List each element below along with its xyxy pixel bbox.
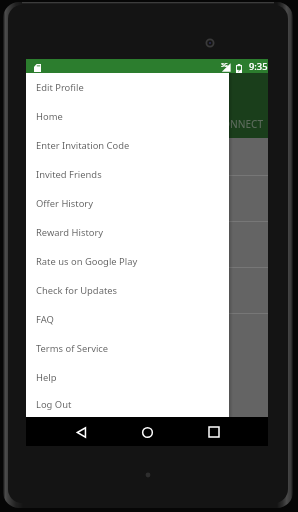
button[interactable]: Rate us on Google Play <box>26 247 229 276</box>
staticText: Rate us on Google Play <box>36 255 138 268</box>
staticText: FAQ <box>36 313 54 326</box>
staticText: Invited Friends <box>36 168 102 181</box>
staticText: 9:35 <box>249 60 268 73</box>
button[interactable]: Enter Invitation Code <box>26 131 229 160</box>
button[interactable]: Log Out <box>26 392 229 417</box>
button[interactable]: Home <box>137 422 157 442</box>
button[interactable]: Back <box>71 422 91 442</box>
button[interactable]: Home <box>26 102 229 131</box>
button[interactable]: FAQ <box>26 305 229 334</box>
staticText: Home <box>36 110 63 123</box>
staticText: Log Out <box>36 398 72 411</box>
staticText: Edit Profile <box>36 81 84 94</box>
button[interactable]: Invited Friends <box>26 160 229 189</box>
button[interactable]: Help <box>26 363 229 392</box>
button[interactable]: Recent apps <box>204 422 224 442</box>
staticText: 3G <box>221 61 228 68</box>
button[interactable]: Reward History <box>26 218 229 247</box>
staticText: Reward History <box>36 226 104 239</box>
button[interactable]: Terms of Service <box>26 334 229 363</box>
staticText: Help <box>36 371 57 384</box>
staticText: Enter Invitation Code <box>36 139 130 152</box>
staticText: Offer History <box>36 197 94 210</box>
staticText: CONNECT <box>216 117 264 131</box>
staticText: Check for Updates <box>36 284 118 297</box>
button[interactable]: Check for Updates <box>26 276 229 305</box>
button[interactable]: Offer History <box>26 189 229 218</box>
button[interactable]: Edit Profile <box>26 73 229 102</box>
staticText: Terms of Service <box>36 342 109 355</box>
